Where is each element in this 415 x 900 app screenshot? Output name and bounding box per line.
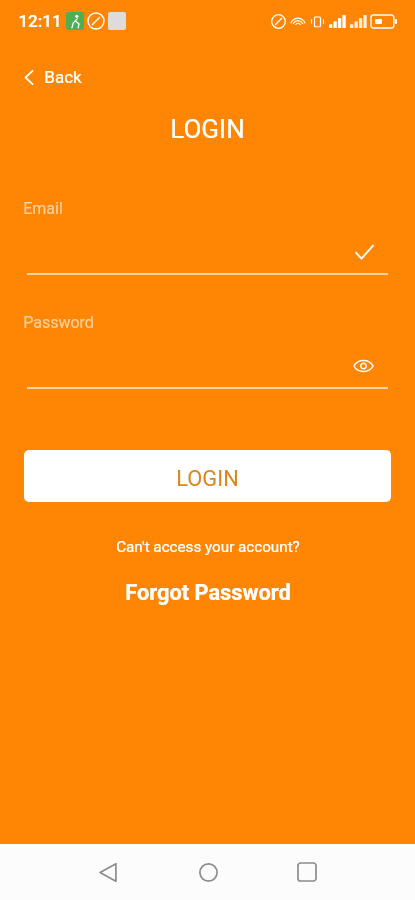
- button[interactable]: Recents: [284, 849, 330, 895]
- other: Show password: [352, 357, 374, 374]
- button[interactable]: Back: [24, 42, 415, 112]
- staticText: Password: [23, 313, 94, 332]
- staticText: Forgot Password: [125, 580, 291, 606]
- staticText: LOGIN: [170, 114, 245, 144]
- button[interactable]: Back: [85, 849, 131, 895]
- staticText: Email: [23, 199, 63, 218]
- staticText: 12:11: [18, 11, 62, 31]
- button[interactable]: Forgot Password: [117, 577, 299, 609]
- staticText: LOGIN: [176, 466, 239, 492]
- staticText: Can't access your account?: [116, 538, 300, 556]
- button[interactable]: LOGIN: [24, 450, 391, 502]
- other: Email valid: [354, 243, 374, 260]
- staticText: Back: [44, 67, 82, 87]
- button[interactable]: Home: [185, 849, 231, 895]
